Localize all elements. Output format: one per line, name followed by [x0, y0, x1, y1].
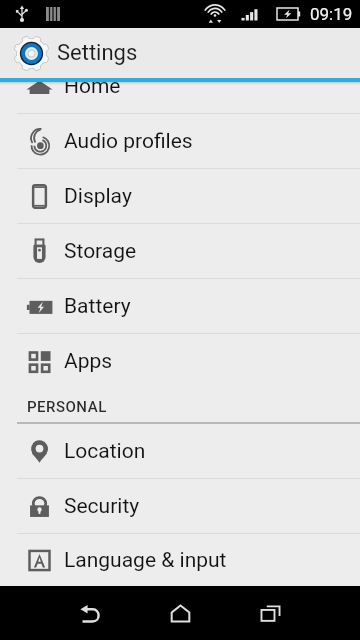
button[interactable]: Storage [0, 224, 360, 278]
button[interactable]: Audio profiles [0, 114, 360, 168]
staticText: Home [64, 82, 121, 99]
staticText: Security [64, 494, 140, 519]
staticText: Language & input [64, 548, 227, 573]
button[interactable]: Battery [0, 279, 360, 333]
staticText: Apps [64, 349, 113, 374]
button[interactable]: Back [45, 586, 135, 640]
staticText: Audio profiles [64, 129, 193, 154]
button[interactable]: Display [0, 169, 360, 223]
staticText: Display [64, 184, 132, 209]
button[interactable]: Recent apps [225, 586, 315, 640]
button[interactable]: Location [0, 424, 360, 478]
button[interactable]: Apps [0, 334, 360, 388]
button[interactable]: Home [135, 586, 225, 640]
button[interactable]: Security [0, 479, 360, 533]
staticText: Storage [64, 239, 137, 264]
button[interactable]: Home [0, 82, 360, 113]
staticText: Location [64, 439, 146, 464]
staticText: Settings [57, 40, 138, 66]
staticText: PERSONAL [27, 398, 107, 416]
button[interactable]: Language & input [0, 534, 360, 586]
button[interactable]: Settings [0, 28, 360, 78]
staticText: Battery [64, 294, 131, 319]
staticText: 09:19 [310, 4, 353, 24]
